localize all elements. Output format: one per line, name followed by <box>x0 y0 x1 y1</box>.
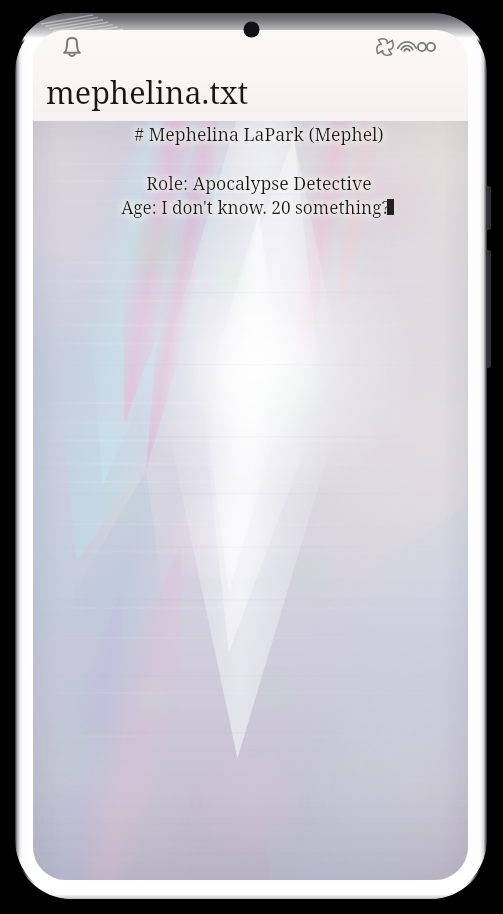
staticText: Age: I don't know. 20 something? <box>121 196 390 220</box>
staticText: Age: I don't know. 20 something? <box>121 196 390 220</box>
staticText: # Mephelina LaPark (Mephel) <box>134 122 384 146</box>
staticText: Role: Apocalypse Detective <box>146 171 372 195</box>
staticText: # Mephelina LaPark (Mephel) <box>134 122 384 146</box>
button[interactable]: Fan speed <box>372 35 398 58</box>
button[interactable]: mephelina.txt <box>46 71 249 113</box>
staticText: Role: Apocalypse Detective <box>146 171 372 195</box>
button[interactable]: Notifications <box>58 35 86 58</box>
button[interactable]: Wi-Fi <box>396 33 418 57</box>
staticText: # Mephelina LaPark (Mephel) <box>134 122 384 146</box>
staticText: Age: I don't know. 20 something? <box>121 196 390 220</box>
staticText: Role: Apocalypse Detective <box>146 171 372 195</box>
button[interactable]: Unlimited data <box>415 35 438 58</box>
